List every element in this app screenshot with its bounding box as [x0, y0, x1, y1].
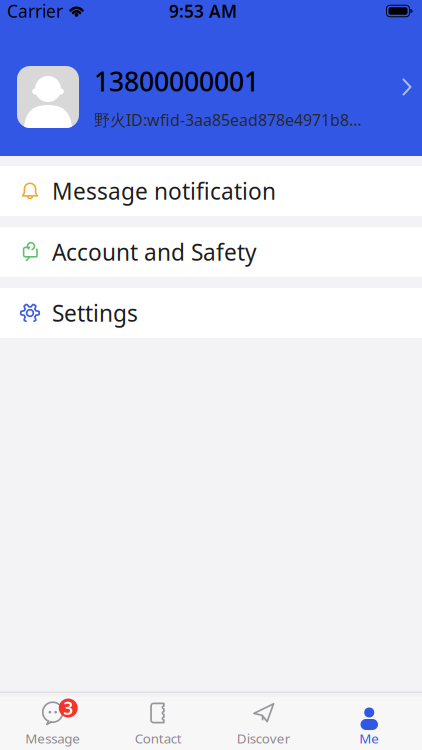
staticText: Contact	[135, 729, 182, 747]
staticText: Account and Safety	[52, 237, 257, 267]
staticText: Settings	[52, 298, 138, 328]
staticText: Message	[25, 729, 80, 747]
button[interactable]: Contact	[105, 699, 211, 747]
button[interactable]: Settings	[0, 288, 422, 338]
button[interactable]: Discover	[211, 699, 316, 747]
button[interactable]: 13800000001	[0, 66, 422, 128]
staticText: 3	[63, 696, 73, 719]
staticText: 13800000001	[94, 64, 259, 99]
staticText: Message notification	[52, 176, 276, 206]
button[interactable]: Me	[316, 699, 422, 747]
staticText: Discover	[237, 729, 291, 747]
staticText: Me	[359, 729, 379, 747]
staticText: Carrier	[7, 0, 63, 22]
button[interactable]: Message notification	[0, 166, 422, 216]
staticText: 野火ID:wfid-3aa85ead878e4971b878d74...	[94, 109, 364, 130]
button[interactable]: 3	[0, 699, 105, 747]
button[interactable]: Account and Safety	[0, 227, 422, 277]
staticText: 9:53 AM	[169, 0, 237, 22]
